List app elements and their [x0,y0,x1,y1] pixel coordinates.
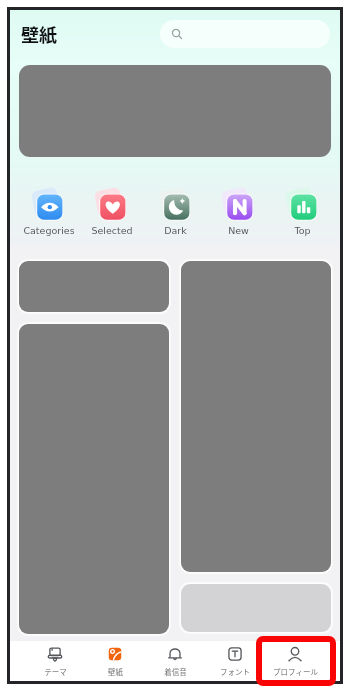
button[interactable]: Wallpaper [19,324,169,634]
staticText: テーマ [44,666,67,677]
staticText: フォント [220,666,250,677]
staticText: New [228,225,249,236]
button[interactable]: Top [277,188,328,236]
staticText: Top [294,225,311,236]
staticText: Dark [164,225,187,236]
button[interactable]: Selected [86,188,137,236]
staticText: 壁紙 [108,666,123,677]
button[interactable]: プロフィール [265,641,325,681]
button[interactable]: New [213,188,264,236]
button[interactable]: 壁紙 [85,641,145,681]
button[interactable]: フォント [205,641,265,681]
button[interactable]: Wallpaper [19,261,169,312]
button[interactable]: Featured banner [19,65,331,157]
button[interactable]: テーマ [25,641,85,681]
button[interactable]: Wallpaper [181,261,331,572]
staticText: 壁紙 [21,21,57,47]
button[interactable]: Search [160,20,330,48]
staticText: Categories [23,225,74,236]
button[interactable]: 着信音 [145,641,205,681]
staticText: Selected [91,225,133,236]
staticText: プロフィール [273,666,318,677]
button[interactable]: Dark [150,188,201,236]
button[interactable]: Categories [23,188,74,236]
staticText: 着信音 [164,666,187,677]
button[interactable]: Wallpaper [181,584,331,632]
